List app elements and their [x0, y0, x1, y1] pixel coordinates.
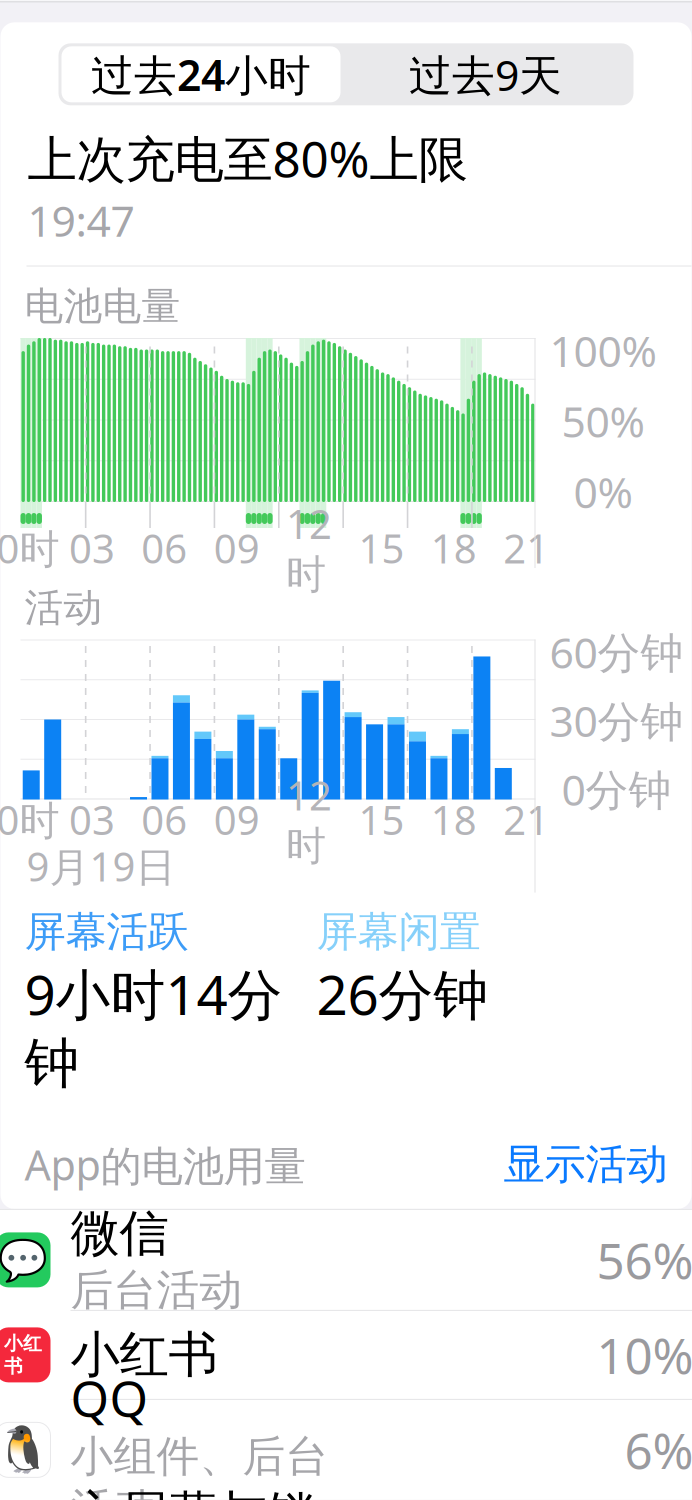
staticText: 0% — [573, 463, 632, 520]
staticText: 19:47 — [27, 192, 134, 248]
staticText: 过去24小时 — [91, 46, 311, 103]
staticText: 21 — [503, 521, 549, 574]
staticText: 50% — [561, 393, 644, 449]
staticText: 21 — [503, 793, 549, 846]
staticText: 03 — [69, 521, 115, 574]
button[interactable]: 小红书 — [0, 1311, 692, 1399]
button[interactable]: 💬 — [0, 1210, 692, 1310]
staticText: 10% — [596, 1322, 692, 1388]
staticText: 0时 — [0, 793, 59, 846]
staticText: 15 — [358, 521, 404, 574]
staticText: 9月19日 — [26, 839, 175, 893]
staticText: 03 — [69, 793, 115, 846]
staticText: 09 — [214, 521, 260, 574]
staticText: 小红书 — [70, 1325, 217, 1385]
button[interactable]: 过去24小时 — [61, 46, 340, 102]
staticText: 60分钟 — [549, 623, 683, 680]
staticText: 0分钟 — [561, 761, 671, 817]
staticText: 后台活动 — [70, 1264, 242, 1316]
staticText: 18 — [431, 793, 477, 846]
button[interactable]: 显示活动 — [503, 1133, 667, 1196]
staticText: 💬 — [0, 1237, 48, 1283]
staticText: 26分钟 — [316, 957, 488, 1030]
staticText: 过去9天 — [409, 46, 562, 103]
staticText: 100% — [549, 322, 656, 379]
staticText: 0时 — [0, 521, 59, 574]
staticText: 15 — [358, 793, 404, 846]
button[interactable]: 🐧 — [0, 1400, 692, 1500]
staticText: 电池电量 — [24, 282, 180, 330]
button[interactable]: 〈 — [0, 0, 157, 10]
button[interactable]: 过去9天 — [340, 46, 630, 102]
staticText: 小红书 — [4, 1332, 42, 1378]
staticText: 屏幕闲置 — [316, 907, 480, 957]
staticText: 12时 — [286, 768, 332, 871]
staticText: 活动 — [24, 584, 102, 631]
staticText: 主屏幕与锁定屏幕 — [70, 1484, 315, 1500]
staticText: 06 — [141, 793, 187, 846]
staticText: 18 — [431, 521, 477, 574]
staticText: 屏幕活跃 — [24, 907, 188, 957]
staticText: 9小时14分钟 — [24, 957, 282, 1097]
staticText: QQ — [70, 1365, 148, 1430]
staticText: 6% — [624, 1417, 692, 1483]
staticText: 小组件、后台活动 — [70, 1430, 328, 1500]
staticText: 12时 — [286, 497, 332, 599]
staticText: 微信 — [70, 1203, 168, 1264]
staticText: 30分钟 — [549, 692, 683, 749]
staticText: 显示活动 — [503, 1139, 667, 1190]
staticText: App的电池用量 — [24, 1137, 305, 1192]
staticText: 09 — [214, 793, 260, 846]
staticText: 🐧 — [0, 1424, 51, 1476]
staticText: 上次充电至80%上限 — [27, 125, 467, 191]
staticText: 56% — [596, 1227, 692, 1293]
staticText: 06 — [141, 521, 187, 574]
